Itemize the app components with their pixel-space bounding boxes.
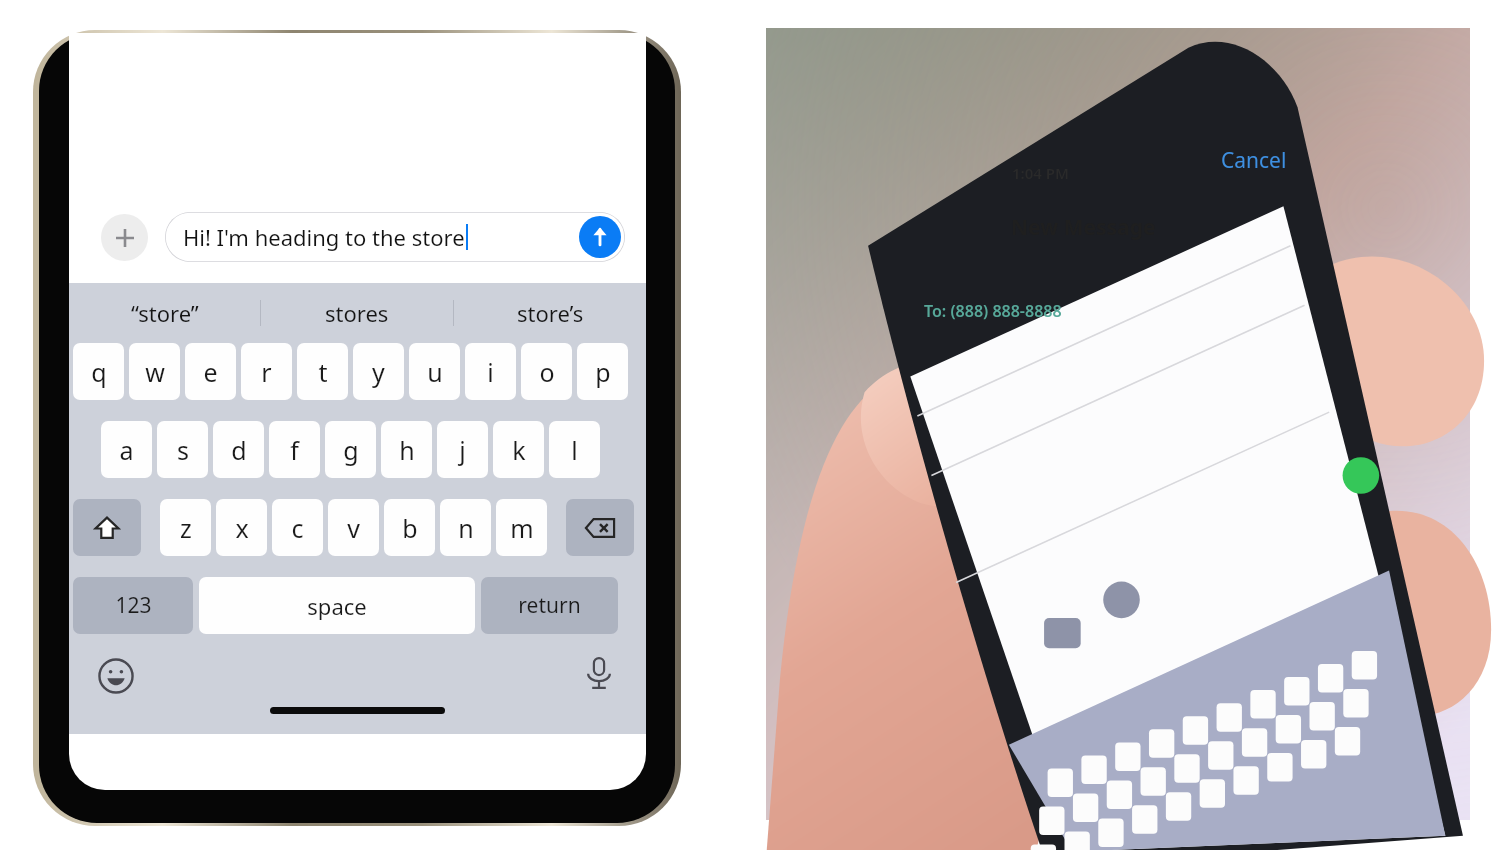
button[interactable]: Backspace — [566, 499, 634, 556]
staticText: f — [290, 433, 299, 467]
staticText: z — [180, 511, 192, 545]
button[interactable]: c — [272, 499, 323, 556]
staticText: s — [177, 433, 189, 467]
staticText: 123 — [115, 591, 152, 620]
staticText: n — [458, 511, 474, 545]
staticText: b — [402, 511, 418, 545]
staticText: g — [343, 433, 359, 467]
button[interactable]: q — [73, 343, 124, 400]
button[interactable]: a — [101, 421, 152, 478]
button[interactable]: n — [440, 499, 491, 556]
button[interactable]: w — [129, 343, 180, 400]
staticText: return — [518, 591, 581, 620]
staticText: q — [91, 355, 107, 389]
staticText: store’s — [517, 298, 584, 328]
button[interactable]: y — [353, 343, 404, 400]
staticText: j — [459, 433, 466, 467]
button[interactable]: h — [381, 421, 432, 478]
staticText: o — [539, 355, 555, 389]
staticText: space — [307, 591, 367, 621]
button[interactable]: x — [216, 499, 267, 556]
button[interactable]: stores — [261, 283, 453, 343]
staticText: u — [427, 355, 443, 389]
button[interactable]: i — [465, 343, 516, 400]
button[interactable]: Hi! I'm heading to the store — [165, 212, 625, 262]
button[interactable]: Dictation — [580, 654, 618, 692]
staticText: t — [318, 355, 328, 389]
button[interactable]: Send — [579, 216, 621, 258]
staticText: Hi! I'm heading to the store — [183, 222, 465, 252]
button[interactable]: o — [521, 343, 572, 400]
staticText: p — [595, 355, 611, 389]
button[interactable]: Shift — [73, 499, 141, 556]
button[interactable]: k — [493, 421, 544, 478]
button[interactable]: r — [241, 343, 292, 400]
button[interactable]: Add attachment — [101, 214, 148, 261]
button[interactable]: j — [437, 421, 488, 478]
button[interactable]: b — [384, 499, 435, 556]
staticText: y — [372, 355, 385, 389]
staticText: “store” — [131, 298, 199, 328]
button[interactable]: m — [496, 499, 547, 556]
staticText: e — [203, 355, 218, 389]
button[interactable]: u — [409, 343, 460, 400]
staticText: Cancel — [1221, 146, 1287, 175]
staticText: k — [512, 433, 526, 467]
staticText: w — [145, 355, 165, 389]
staticText: l — [571, 433, 578, 467]
button[interactable]: store’s — [454, 283, 646, 343]
button[interactable]: “store” — [69, 283, 260, 343]
button[interactable]: z — [160, 499, 211, 556]
staticText: stores — [325, 298, 389, 328]
staticText: 1:04 PM — [1012, 163, 1069, 183]
staticText: a — [119, 433, 134, 467]
button[interactable]: space — [199, 577, 475, 634]
staticText: i — [487, 355, 494, 389]
button[interactable]: Emoji — [97, 657, 135, 695]
staticText: c — [291, 511, 304, 545]
staticText: v — [347, 511, 360, 545]
button[interactable]: p — [577, 343, 628, 400]
button[interactable]: g — [325, 421, 376, 478]
staticText: h — [399, 433, 415, 467]
button[interactable]: f — [269, 421, 320, 478]
staticText: r — [261, 355, 272, 389]
staticText: d — [231, 433, 247, 467]
button[interactable]: l — [549, 421, 600, 478]
button[interactable]: v — [328, 499, 379, 556]
button[interactable]: e — [185, 343, 236, 400]
staticText: x — [235, 511, 249, 545]
button[interactable]: t — [297, 343, 348, 400]
staticText: To: (888) 888-8888 — [924, 300, 1062, 322]
button[interactable]: return — [481, 577, 618, 634]
staticText: m — [510, 511, 534, 545]
button[interactable]: 123 — [73, 577, 193, 634]
button[interactable]: d — [213, 421, 264, 478]
button[interactable]: s — [157, 421, 208, 478]
